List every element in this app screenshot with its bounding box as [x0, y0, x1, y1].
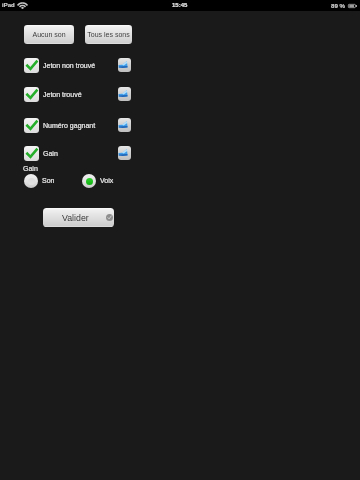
staticText: iPad — [2, 2, 15, 9]
staticText: Numéro gagnant — [43, 122, 96, 130]
button[interactable]: Play sound — [118, 118, 131, 132]
button[interactable]: Play sound — [118, 58, 131, 72]
staticText: 89 % — [331, 2, 346, 9]
button[interactable]: Voix — [82, 174, 114, 188]
button[interactable]: Play sound — [118, 146, 131, 160]
button[interactable]: Play sound — [118, 87, 131, 101]
staticText: Gain — [43, 150, 58, 158]
button[interactable]: Numéro gagnant — [24, 118, 131, 133]
button[interactable]: Jeton trouvé — [24, 87, 131, 102]
staticText: Jeton trouvé — [43, 91, 82, 99]
staticText: Tous les sons — [87, 31, 130, 39]
staticText: Gain — [23, 165, 38, 173]
staticText: Son — [42, 177, 55, 185]
button[interactable]: Tous les sons — [85, 25, 132, 44]
button[interactable]: Jeton non trouvé — [24, 58, 131, 73]
staticText: Voix — [100, 177, 114, 185]
button[interactable]: Aucun son — [24, 25, 74, 44]
staticText: Aucun son — [32, 31, 66, 39]
staticText: Valider — [62, 213, 89, 223]
button[interactable]: Valider — [43, 208, 114, 227]
staticText: 15:45 — [172, 2, 188, 9]
staticText: Jeton non trouvé — [43, 62, 96, 70]
button[interactable]: Gain — [24, 146, 131, 161]
button[interactable]: Son — [24, 174, 55, 188]
